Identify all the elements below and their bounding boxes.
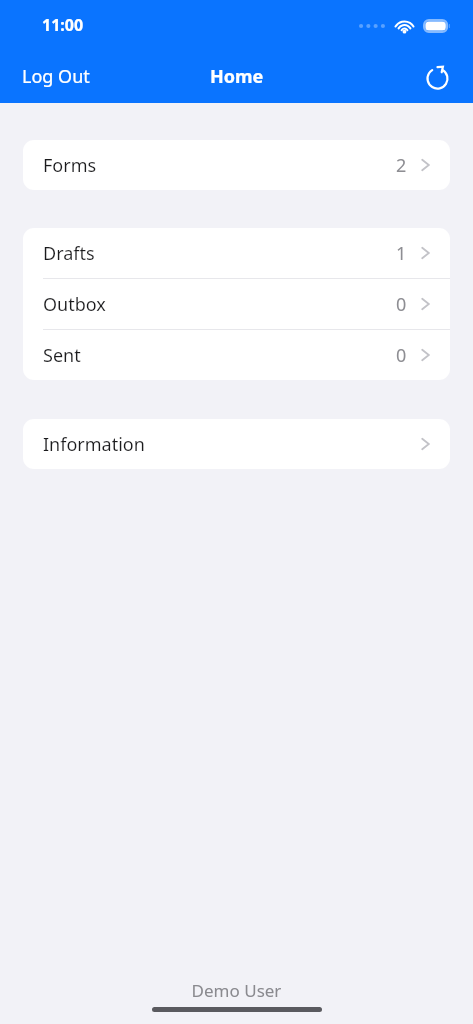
staticText: Forms <box>43 153 97 178</box>
staticText: Home <box>210 64 264 89</box>
button[interactable]: Log Out <box>0 54 112 99</box>
staticText: 0 <box>396 343 407 368</box>
staticText: Information <box>43 432 145 457</box>
button[interactable]: Information <box>23 419 450 469</box>
staticText: 2 <box>396 153 407 178</box>
staticText: Log Out <box>22 64 90 89</box>
staticText: Demo User <box>0 979 473 1002</box>
staticText: 1 <box>396 241 407 266</box>
staticText: Outbox <box>43 292 106 317</box>
button[interactable]: Sent <box>23 330 450 380</box>
button[interactable]: Outbox <box>23 279 450 329</box>
button[interactable]: Drafts <box>23 228 450 278</box>
button[interactable]: Refresh <box>416 56 458 98</box>
staticText: Sent <box>43 343 81 368</box>
staticText: Drafts <box>43 241 95 266</box>
staticText: 0 <box>396 292 407 317</box>
button[interactable]: Forms <box>23 140 450 190</box>
staticText: 11:00 <box>42 14 84 36</box>
